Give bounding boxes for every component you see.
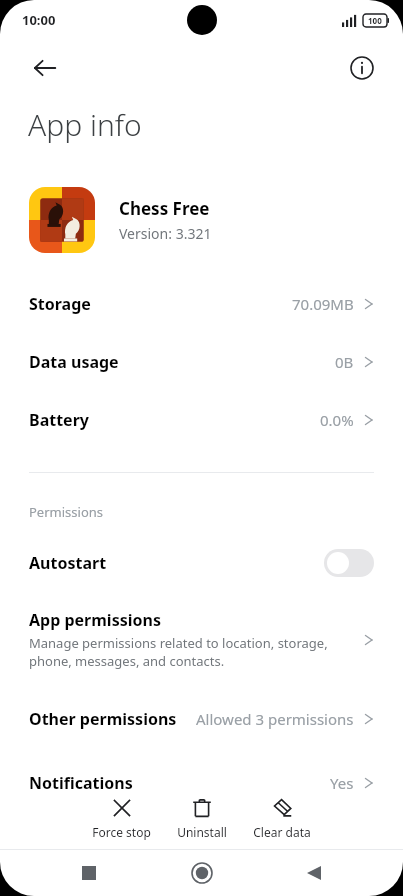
staticText: Version: 3.321 xyxy=(119,224,212,243)
button[interactable]: Battery xyxy=(0,391,403,449)
staticText: Battery xyxy=(29,409,89,431)
staticText: Uninstall xyxy=(177,824,227,840)
staticText: Chess Free xyxy=(119,197,210,220)
button[interactable]: Clear data xyxy=(247,795,317,842)
button[interactable]: Other permissions xyxy=(0,690,403,748)
staticText: Clear data xyxy=(253,824,311,840)
staticText: Other permissions xyxy=(29,708,177,730)
staticText: App permissions xyxy=(29,609,161,631)
staticText: Manage permissions related to location, … xyxy=(29,634,328,670)
button[interactable]: App permissions xyxy=(0,599,403,680)
button[interactable]: Data usage xyxy=(0,333,403,391)
staticText: 0.0% xyxy=(320,410,354,430)
staticText: 100 xyxy=(368,15,382,26)
button[interactable]: Home xyxy=(178,850,226,896)
staticText: 0B xyxy=(335,352,354,372)
button[interactable]: Back xyxy=(21,44,69,92)
button[interactable]: Notifications xyxy=(0,754,403,812)
button[interactable]: Autostart xyxy=(0,539,403,587)
staticText: Force stop xyxy=(92,824,151,840)
button[interactable]: Storage xyxy=(0,275,403,333)
button[interactable]: Uninstall xyxy=(171,795,233,842)
staticText: 70.09MB xyxy=(292,294,354,314)
button[interactable]: Force stop xyxy=(86,795,157,842)
staticText: Yes xyxy=(330,773,354,793)
staticText: Allowed 3 permissions xyxy=(196,709,354,729)
staticText: Permissions xyxy=(29,503,104,521)
staticText: 10:00 xyxy=(22,11,56,29)
button[interactable]: Recents xyxy=(65,850,113,896)
staticText: Notifications xyxy=(29,772,133,794)
button[interactable]: Back xyxy=(290,850,338,896)
staticText: Autostart xyxy=(29,552,107,574)
staticText: App info xyxy=(28,104,142,145)
staticText: Storage xyxy=(29,293,91,315)
button[interactable]: App details xyxy=(340,46,384,90)
staticText: Data usage xyxy=(29,351,119,373)
